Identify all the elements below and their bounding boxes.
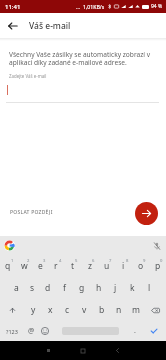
button[interactable]: ?123 xyxy=(0,321,24,341)
staticText: r xyxy=(54,260,58,272)
button[interactable]: g xyxy=(73,277,90,299)
staticText: 0 xyxy=(160,258,163,264)
staticText: 1 xyxy=(11,258,14,264)
staticText: g xyxy=(79,282,85,294)
staticText: 7 xyxy=(109,258,112,264)
button[interactable]: d xyxy=(40,277,56,299)
staticText: a xyxy=(14,282,19,294)
button[interactable]: Domů xyxy=(73,341,93,360)
staticText: e xyxy=(38,260,43,272)
staticText: 2 xyxy=(27,258,30,264)
staticText: Váš e-mail xyxy=(29,20,71,32)
staticText: u xyxy=(104,260,110,272)
button[interactable]: y xyxy=(25,299,42,321)
staticText: l xyxy=(148,282,151,294)
button[interactable]: Zpět xyxy=(107,341,127,360)
button[interactable]: Smazat xyxy=(144,299,166,321)
staticText: h xyxy=(96,282,102,294)
button[interactable]: t xyxy=(64,255,81,277)
staticText: t xyxy=(71,260,75,272)
staticText: ?123 xyxy=(6,328,18,335)
staticText: s xyxy=(30,282,35,294)
staticText: v xyxy=(82,304,87,316)
button[interactable]: b xyxy=(93,299,110,321)
button[interactable]: f xyxy=(56,277,73,299)
button[interactable]: z xyxy=(81,255,98,277)
staticText: p xyxy=(155,260,161,272)
staticText: POSLAT POZDĚJI xyxy=(10,209,53,216)
staticText: b xyxy=(99,304,105,316)
button[interactable]: e xyxy=(32,255,48,277)
button[interactable]: Shift xyxy=(0,299,25,321)
staticText: c xyxy=(65,304,70,316)
staticText: j xyxy=(114,282,117,294)
button[interactable]: Zpět xyxy=(0,13,25,38)
staticText: o xyxy=(138,260,144,272)
staticText: q xyxy=(5,260,11,272)
button[interactable]: Pokračovat xyxy=(135,202,158,225)
staticText: 5 xyxy=(75,258,78,264)
staticText: f xyxy=(63,282,66,294)
button[interactable]: l xyxy=(141,277,158,299)
button[interactable]: o xyxy=(132,255,149,277)
staticText: 8 xyxy=(126,258,129,264)
staticText: 9 xyxy=(143,258,146,264)
button[interactable]: Poslední aplikace xyxy=(38,341,58,360)
button[interactable]: c xyxy=(59,299,76,321)
staticText: k xyxy=(130,282,135,294)
staticText: … xyxy=(76,3,81,10)
staticText: x xyxy=(48,304,53,316)
staticText: 6 xyxy=(92,258,95,264)
staticText: i xyxy=(122,260,125,272)
staticText: y xyxy=(31,304,36,316)
button[interactable]: n xyxy=(110,299,127,321)
staticText: d xyxy=(45,282,51,294)
button[interactable]: q xyxy=(0,255,16,277)
button[interactable]: w xyxy=(16,255,32,277)
button[interactable]: Emodži xyxy=(38,321,52,341)
button[interactable]: POSLAT POZDĚJI xyxy=(4,204,59,221)
button[interactable]: h xyxy=(90,277,107,299)
button[interactable]: p xyxy=(149,255,166,277)
button[interactable]: Mikrofon vypnutý xyxy=(153,242,161,250)
staticText: z xyxy=(88,260,92,272)
button[interactable]: u xyxy=(98,255,115,277)
staticText: 3 xyxy=(43,258,46,264)
staticText: Zadejte Váš e-mail xyxy=(9,73,47,79)
button[interactable]: v xyxy=(76,299,93,321)
button[interactable]: r xyxy=(48,255,64,277)
staticText: 11:41 xyxy=(5,3,21,11)
button[interactable]: m xyxy=(127,299,144,321)
button[interactable]: k xyxy=(124,277,141,299)
button[interactable]: Google xyxy=(4,240,15,251)
staticText: w xyxy=(21,260,28,272)
staticText: @ xyxy=(28,326,35,336)
staticText: . xyxy=(134,326,136,336)
button[interactable]: Zavináč xyxy=(24,321,38,341)
staticText: n xyxy=(116,304,122,316)
button[interactable]: s xyxy=(24,277,40,299)
staticText: m xyxy=(132,304,140,316)
button[interactable]: . xyxy=(129,321,141,341)
staticText: 1,01KB/s xyxy=(83,3,105,10)
button[interactable]: x xyxy=(42,299,59,321)
staticText: 4 xyxy=(59,258,62,264)
staticText: Všechny Vaše zásilky se automaticky zobr… xyxy=(9,50,159,67)
button[interactable]: i xyxy=(115,255,132,277)
button[interactable]: j xyxy=(107,277,124,299)
button[interactable]: Hotovo xyxy=(141,321,166,341)
staticText: 94 % xyxy=(151,3,163,10)
button[interactable]: a xyxy=(8,277,24,299)
